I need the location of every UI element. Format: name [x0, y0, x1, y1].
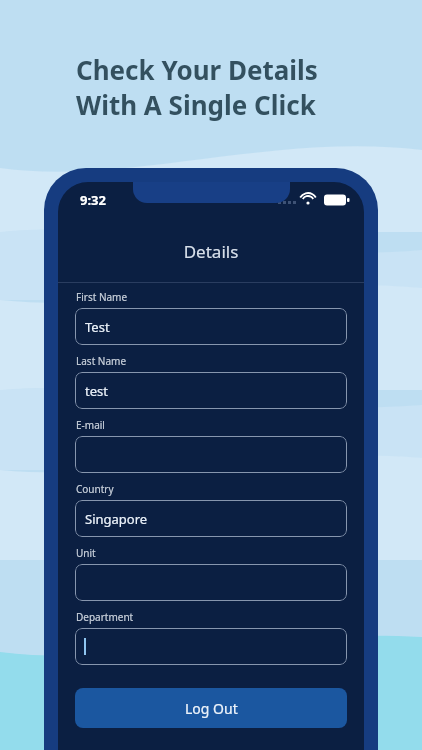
button[interactable]: [75, 628, 347, 665]
staticText: With A Single Click: [76, 87, 316, 122]
staticText: Department: [76, 610, 134, 624]
staticText: First Name: [76, 290, 128, 304]
staticText: test: [85, 382, 108, 400]
staticText: Last Name: [76, 354, 127, 368]
button[interactable]: Singapore: [75, 500, 347, 537]
staticText: E-mail: [76, 418, 105, 432]
staticText: 9:32: [80, 191, 106, 209]
staticText: Log Out: [185, 699, 238, 718]
staticText: Test: [85, 318, 110, 336]
staticText: Check Your Details: [76, 52, 318, 87]
button[interactable]: Log Out: [75, 688, 347, 728]
staticText: Unit: [76, 546, 96, 560]
staticText: Details: [58, 240, 364, 263]
staticText: Singapore: [85, 510, 148, 528]
staticText: Country: [76, 482, 114, 496]
button[interactable]: test: [75, 372, 347, 409]
button[interactable]: Test: [75, 308, 347, 345]
button[interactable]: [75, 564, 347, 601]
button[interactable]: [75, 436, 347, 473]
